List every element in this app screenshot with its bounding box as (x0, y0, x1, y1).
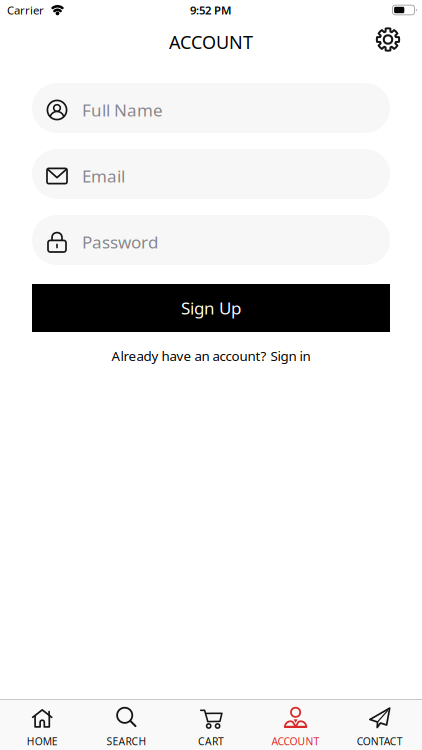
button[interactable]: HOME (0, 705, 84, 749)
staticText: ACCOUNT (271, 734, 319, 748)
staticText: Sign in (270, 347, 310, 365)
staticText: Password (82, 231, 158, 253)
staticText: HOME (27, 734, 58, 748)
button[interactable]: SEARCH (84, 705, 169, 749)
staticText: CART (198, 734, 224, 748)
button[interactable]: Email (32, 149, 390, 199)
button[interactable]: ACCOUNT (253, 705, 338, 749)
staticText: Sign Up (181, 297, 241, 319)
button[interactable]: CONTACT (338, 705, 422, 749)
button[interactable]: CART (169, 705, 253, 749)
button[interactable]: Full Name (32, 83, 390, 133)
button[interactable]: Password (32, 215, 390, 265)
staticText: CONTACT (357, 734, 403, 748)
staticText: Already have an account? (111, 347, 266, 365)
staticText: 9:52 PM (190, 2, 232, 17)
button[interactable]: Sign in (270, 347, 310, 365)
staticText: SEARCH (107, 734, 147, 748)
button[interactable]: Sign Up (32, 284, 390, 332)
staticText: Carrier (7, 2, 44, 17)
staticText: Full Name (82, 99, 163, 121)
staticText: Email (82, 165, 125, 187)
staticText: ACCOUNT (169, 30, 253, 54)
button[interactable]: Settings (375, 26, 422, 52)
